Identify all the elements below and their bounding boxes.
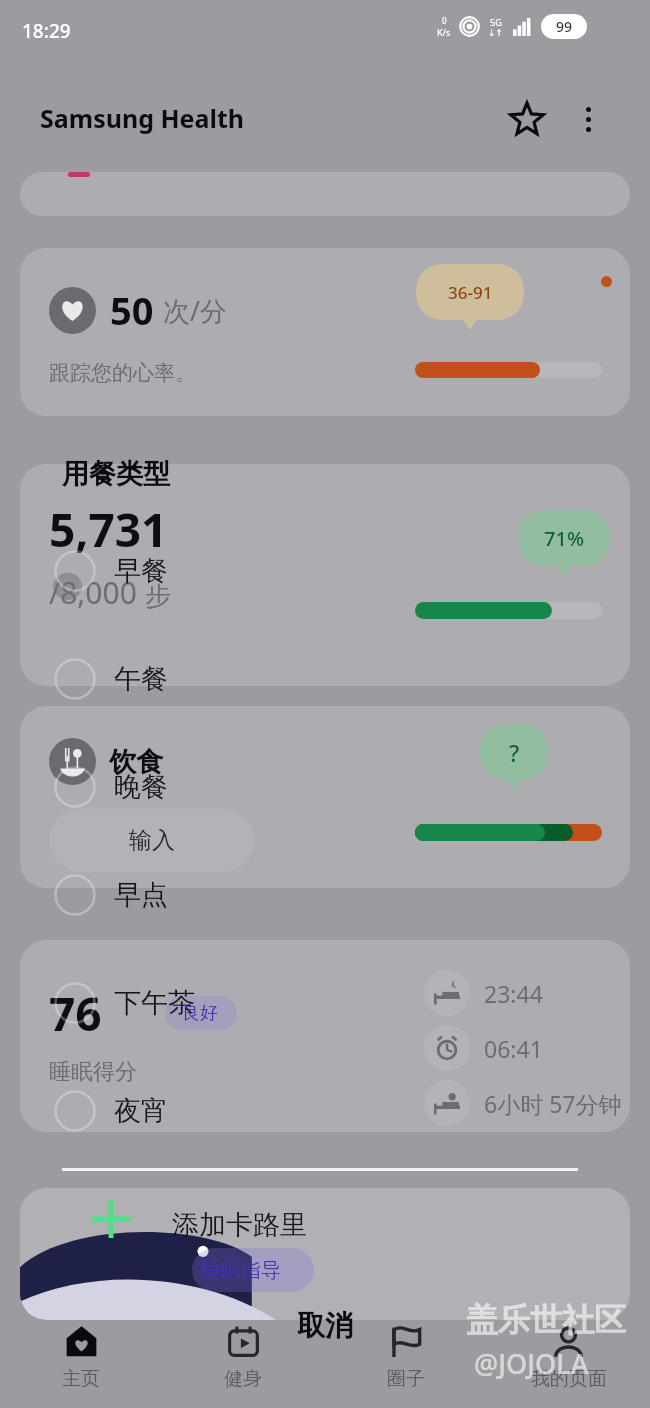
staticText: Samsung Health xyxy=(40,101,245,135)
button[interactable]: 早餐 xyxy=(40,536,610,606)
staticText: 50 xyxy=(110,284,154,336)
staticText: 睡眠得分 xyxy=(49,1058,137,1086)
staticText: 添加卡路里 xyxy=(172,1208,307,1242)
button[interactable]: 下午茶 xyxy=(40,968,610,1038)
staticText: 步 xyxy=(145,580,171,613)
staticText: ↓↑ xyxy=(488,28,504,38)
button[interactable]: 午餐 xyxy=(40,644,610,714)
staticText: 圈子 xyxy=(387,1367,425,1391)
button[interactable]: 50 xyxy=(20,248,630,416)
staticText: 用餐类型 xyxy=(62,457,170,491)
staticText: 跟踪您的心率。 xyxy=(49,360,196,386)
staticText: 06:41 xyxy=(484,1033,543,1064)
staticText: 5G xyxy=(490,16,502,28)
staticText: 输入 xyxy=(129,826,175,855)
button[interactable]: 添加卡路里 xyxy=(20,1188,630,1320)
button[interactable]: 圈子 xyxy=(324,1308,487,1408)
button[interactable]: More options xyxy=(562,93,614,145)
staticText: 18:29 xyxy=(22,18,71,44)
button[interactable]: 早点 xyxy=(40,860,610,930)
button[interactable]: Favorite xyxy=(500,93,554,147)
button[interactable]: 76 xyxy=(20,940,630,1132)
staticText: 次/分 xyxy=(163,292,228,329)
staticText: 良好 xyxy=(182,1002,218,1025)
staticText: 夜宵 xyxy=(114,1094,168,1128)
staticText: 早点 xyxy=(114,878,168,912)
staticText: 99 xyxy=(556,17,573,36)
staticText: @JOJOLA xyxy=(474,1345,589,1382)
staticText: 主页 xyxy=(62,1367,100,1391)
staticText: 下午茶 xyxy=(114,986,195,1020)
staticText: 36-91 xyxy=(448,281,493,304)
staticText: 晚餐 xyxy=(114,770,168,804)
button[interactable]: 我的页面 xyxy=(487,1308,650,1408)
button[interactable]: 健身 xyxy=(162,1308,324,1408)
button[interactable] xyxy=(20,172,630,216)
staticText: /8,000 xyxy=(49,572,137,613)
staticText: 取消 xyxy=(297,1308,353,1343)
staticText: K/s xyxy=(437,26,451,38)
staticText: 6小时 57分钟 xyxy=(484,1088,622,1119)
staticText: 23:44 xyxy=(484,978,543,1009)
button[interactable]: 5,731 xyxy=(20,464,630,686)
staticText: 早餐 xyxy=(114,554,168,588)
staticText: 饮食 xyxy=(109,745,163,779)
staticText: 睡眠指导 xyxy=(201,1258,281,1283)
staticText: 我的页面 xyxy=(531,1367,607,1391)
button[interactable]: 输入 xyxy=(49,809,254,872)
button[interactable]: 取消 xyxy=(252,1294,398,1356)
button[interactable]: 夜宵 xyxy=(40,1076,610,1146)
button[interactable]: 晚餐 xyxy=(40,752,610,822)
staticText: 0 xyxy=(442,15,447,26)
staticText: 健身 xyxy=(224,1367,262,1391)
staticText: 盖乐世社区 xyxy=(466,1300,626,1340)
staticText: 5,731 xyxy=(49,498,168,561)
staticText: ? xyxy=(509,737,520,768)
staticText: 午餐 xyxy=(114,662,168,696)
staticText: 76 xyxy=(49,982,102,1045)
button[interactable]: 饮食 xyxy=(20,706,630,888)
button[interactable]: 主页 xyxy=(0,1308,162,1408)
staticText: 71% xyxy=(544,525,584,552)
